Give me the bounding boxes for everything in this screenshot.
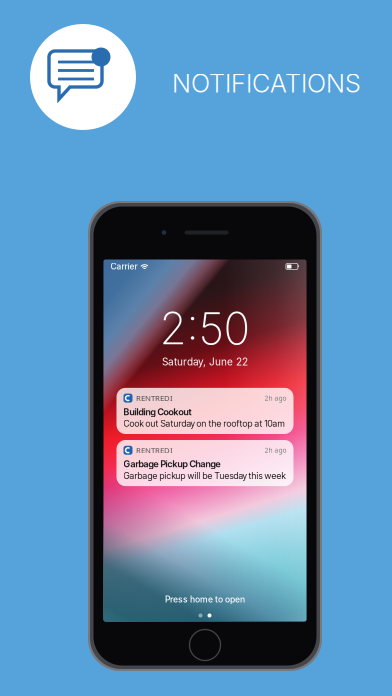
staticText: 2:50 [159, 301, 250, 355]
staticText: RENTREDI [136, 445, 173, 455]
staticText: Cook out Saturday on the rooftop at 10am [123, 418, 284, 429]
staticText: 2h ago [264, 446, 286, 455]
staticText: 2h ago [264, 394, 286, 403]
button[interactable]: RENTREDI [116, 440, 293, 486]
staticText: NOTIFICATIONS [172, 68, 361, 99]
staticText: Saturday, June 22 [162, 356, 248, 368]
staticText: Press home to open [165, 594, 245, 604]
staticText: Carrier [110, 261, 137, 271]
staticText: Garbage Pickup Change [123, 458, 220, 469]
staticText: Building Cookout [123, 406, 191, 417]
staticText: Garbage pickup will be Tuesday this week [123, 470, 285, 481]
staticText: RENTREDI [136, 393, 173, 403]
button[interactable]: RENTREDI [116, 388, 293, 434]
